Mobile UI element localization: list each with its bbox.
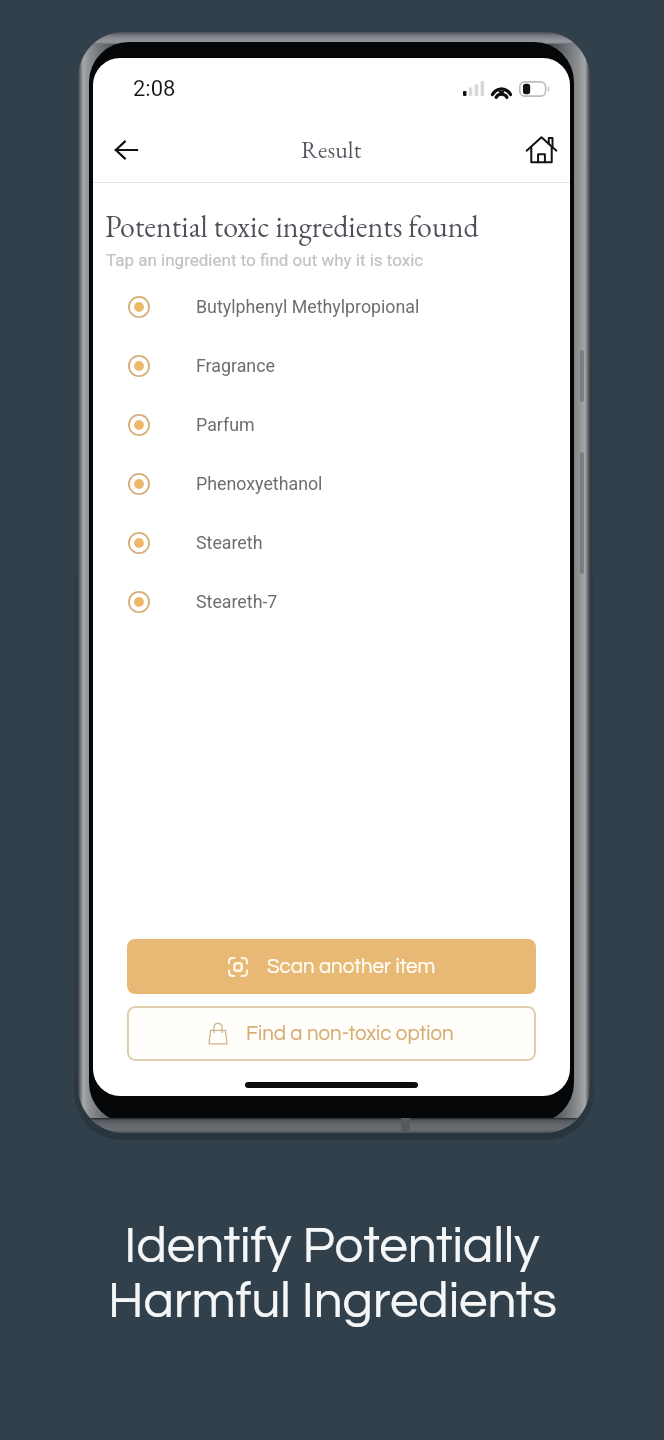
button[interactable]: Butylphenyl Methylpropional: [93, 277, 570, 336]
staticText: Butylphenyl Methylpropional: [196, 296, 420, 317]
staticText: Result: [301, 134, 362, 165]
staticText: Tap an ingredient to find out why it is …: [106, 250, 424, 270]
staticText: Fragrance: [196, 355, 275, 376]
button[interactable]: Steareth-7: [93, 572, 570, 631]
staticText: Scan another item: [267, 956, 436, 977]
button[interactable]: Find a non-toxic option: [127, 1006, 536, 1061]
button[interactable]: Parfum: [93, 395, 570, 454]
staticText: Identify Potentially: [124, 1220, 540, 1273]
staticText: Steareth: [196, 532, 263, 553]
button[interactable]: Home: [519, 128, 563, 172]
button[interactable]: Phenoxyethanol: [93, 454, 570, 513]
staticText: Potential toxic ingredients found: [105, 207, 479, 246]
button[interactable]: Back: [104, 128, 148, 172]
staticText: Steareth-7: [196, 591, 278, 612]
staticText: Harmful Ingredients: [108, 1275, 557, 1328]
staticText: Parfum: [196, 414, 255, 435]
staticText: 2:08: [133, 76, 176, 102]
button[interactable]: Steareth: [93, 513, 570, 572]
staticText: Find a non-toxic option: [246, 1023, 454, 1044]
button[interactable]: Fragrance: [93, 336, 570, 395]
button[interactable]: Scan another item: [127, 939, 536, 994]
staticText: Phenoxyethanol: [196, 473, 323, 494]
